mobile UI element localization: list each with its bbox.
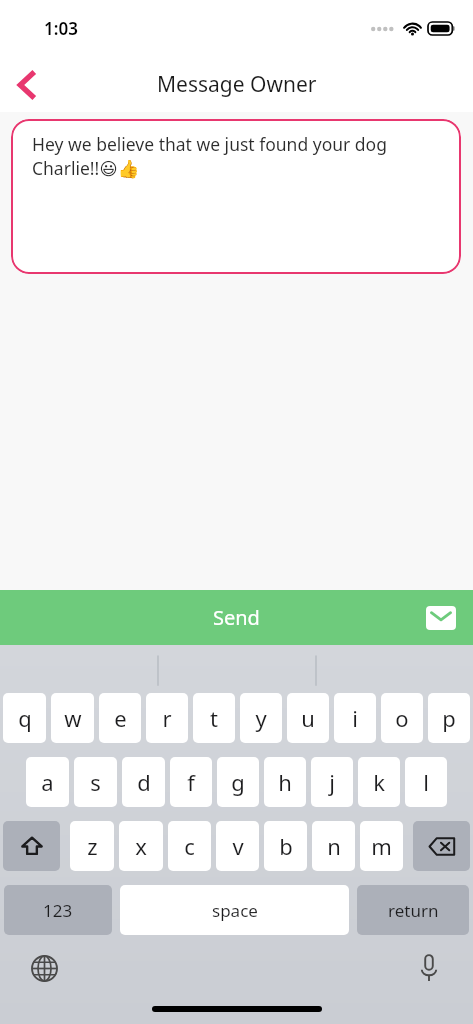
button[interactable]: j xyxy=(311,757,353,807)
staticText: d xyxy=(137,767,151,797)
button[interactable]: e xyxy=(99,693,141,743)
staticText: t xyxy=(210,703,218,733)
button[interactable]: s xyxy=(74,757,117,807)
button[interactable]: m xyxy=(360,821,403,871)
button[interactable]: Change keyboard xyxy=(21,945,67,991)
staticText: z xyxy=(87,831,98,861)
staticText: k xyxy=(373,767,385,797)
button[interactable]: w xyxy=(51,693,94,743)
staticText: a xyxy=(41,767,54,797)
button[interactable]: Dictate xyxy=(406,945,452,991)
button[interactable]: h xyxy=(264,757,306,807)
staticText: v xyxy=(232,831,244,861)
staticText: m xyxy=(371,831,392,861)
staticText: r xyxy=(162,703,172,733)
staticText: space xyxy=(212,899,258,922)
button[interactable]: Send xyxy=(0,590,473,645)
button[interactable]: c xyxy=(168,821,211,871)
button[interactable]: Backspace xyxy=(413,821,470,871)
staticText: h xyxy=(278,767,292,797)
button[interactable]: Shift xyxy=(3,821,60,871)
button[interactable]: z xyxy=(70,821,114,871)
staticText: p xyxy=(442,703,456,733)
button[interactable]: t xyxy=(193,693,235,743)
staticText: s xyxy=(90,767,101,797)
button[interactable]: f xyxy=(170,757,212,807)
button[interactable]: b xyxy=(264,821,307,871)
button[interactable]: i xyxy=(334,693,376,743)
staticText: 1:03 xyxy=(44,17,78,40)
button[interactable]: a xyxy=(26,757,69,807)
button[interactable]: y xyxy=(240,693,282,743)
button[interactable]: v xyxy=(216,821,259,871)
button[interactable]: p xyxy=(428,693,470,743)
staticText: c xyxy=(184,831,195,861)
button[interactable]: Hey we believe that we just found your d… xyxy=(11,119,461,274)
staticText: o xyxy=(395,703,409,733)
button[interactable]: x xyxy=(119,821,163,871)
button[interactable]: 123 xyxy=(4,885,112,935)
staticText: n xyxy=(327,831,341,861)
staticText: 123 xyxy=(43,899,73,922)
button[interactable]: o xyxy=(381,693,423,743)
button[interactable]: d xyxy=(122,757,165,807)
button[interactable]: u xyxy=(287,693,329,743)
button[interactable]: l xyxy=(405,757,447,807)
staticText: b xyxy=(279,831,293,861)
staticText: Send xyxy=(213,604,260,631)
staticText: e xyxy=(114,703,127,733)
staticText: f xyxy=(187,767,195,797)
button[interactable]: space xyxy=(120,885,349,935)
button[interactable]: g xyxy=(217,757,259,807)
staticText: return xyxy=(388,899,439,922)
button[interactable]: n xyxy=(312,821,355,871)
staticText: i xyxy=(352,703,358,733)
staticText: l xyxy=(423,767,429,797)
staticText: y xyxy=(255,703,267,733)
staticText: q xyxy=(18,703,32,733)
staticText: Message Owner xyxy=(157,70,317,99)
staticText: w xyxy=(64,703,82,733)
staticText: j xyxy=(329,767,335,797)
staticText: g xyxy=(231,767,245,797)
button[interactable]: return xyxy=(357,885,469,935)
button[interactable]: q xyxy=(3,693,46,743)
button[interactable]: k xyxy=(358,757,400,807)
button[interactable]: Back xyxy=(0,59,52,111)
staticText: u xyxy=(301,703,315,733)
staticText: x xyxy=(135,831,147,861)
staticText: Hey we believe that we just found your d… xyxy=(32,132,445,180)
button[interactable]: r xyxy=(146,693,188,743)
